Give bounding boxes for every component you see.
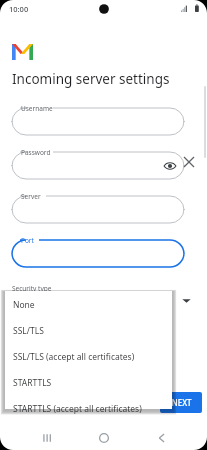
staticText: Server	[21, 192, 41, 201]
staticText: SSL/TLS	[13, 325, 44, 337]
button[interactable]: Security type dropdown	[180, 294, 193, 307]
button[interactable]: SSL/TLS	[5, 318, 172, 344]
button[interactable]: STARTTLS	[5, 370, 172, 396]
button[interactable]: SSL/TLS (accept all certificates)	[5, 344, 172, 370]
staticText: Port	[21, 236, 34, 245]
staticText: Password	[21, 148, 51, 157]
staticText: STARTTLS (accept all certificates)	[13, 403, 142, 415]
staticText: Username	[21, 104, 53, 113]
staticText: STARTTLS	[13, 377, 52, 389]
button[interactable]: Recents	[36, 427, 58, 449]
button[interactable]: Back	[149, 427, 171, 449]
button[interactable]: Home	[93, 427, 115, 449]
staticText: Incoming server settings	[12, 70, 170, 88]
staticText: Security type	[12, 284, 52, 293]
other: Gmail	[12, 44, 33, 60]
button[interactable]: Server	[12, 190, 184, 224]
button[interactable]: None	[5, 292, 172, 318]
staticText: None	[13, 299, 35, 311]
button[interactable]: STARTTLS (accept all certificates)	[5, 396, 172, 422]
staticText: NEXT	[171, 397, 192, 408]
button[interactable]: Username	[12, 102, 184, 136]
button[interactable]: NEXT	[160, 392, 202, 413]
staticText: 10:00	[9, 4, 29, 14]
button[interactable]: Show password	[162, 158, 178, 174]
button[interactable]: Port	[12, 234, 184, 268]
button[interactable]: Clear password	[179, 152, 199, 172]
staticText: SSL/TLS (accept all certificates)	[13, 351, 135, 363]
button[interactable]: Password	[12, 146, 184, 180]
